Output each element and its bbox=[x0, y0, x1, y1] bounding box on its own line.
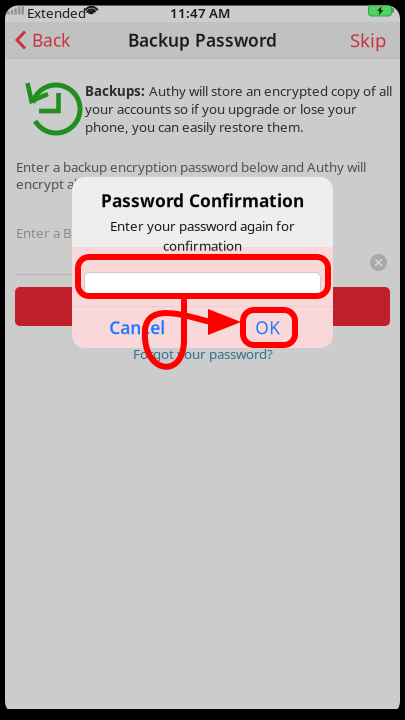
staticText: Enter your password again for bbox=[110, 217, 295, 235]
staticText: Backups: bbox=[85, 82, 145, 100]
button[interactable]: OK bbox=[202, 307, 333, 348]
staticText: confirmation bbox=[163, 237, 242, 254]
button[interactable]: Clear text bbox=[370, 254, 387, 271]
staticText: Enter a Backup Password bbox=[16, 224, 169, 242]
button[interactable]: Skip bbox=[340, 23, 400, 57]
staticText: your accounts so if you upgrade or lose … bbox=[85, 100, 357, 118]
button[interactable] bbox=[15, 287, 390, 326]
staticText: Back bbox=[32, 28, 70, 51]
staticText: Authy will store an encrypted copy of al… bbox=[149, 82, 392, 100]
staticText: OK bbox=[255, 316, 280, 339]
staticText: Enter a backup encryption password below… bbox=[16, 158, 366, 176]
button[interactable]: Back bbox=[5, 23, 80, 57]
staticText: Forgot your password? bbox=[133, 345, 273, 363]
staticText: Skip bbox=[350, 28, 386, 52]
staticText: Password Confirmation bbox=[101, 189, 304, 212]
staticText: Backup Password bbox=[128, 28, 277, 51]
button[interactable]: Cancel bbox=[72, 307, 202, 348]
staticText: Cancel bbox=[109, 316, 165, 339]
staticText: encrypt all your accounts with it. bbox=[16, 175, 213, 193]
button[interactable]: Forgot your password? bbox=[123, 340, 283, 368]
staticText: 11:47 AM bbox=[170, 4, 230, 22]
staticText: Extended bbox=[27, 4, 86, 22]
staticText: phone, you can easily restore them. bbox=[85, 118, 304, 136]
